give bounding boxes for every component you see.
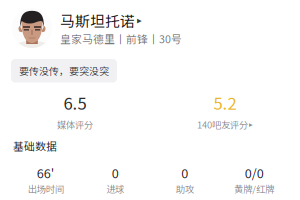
staticText: 助攻: [176, 182, 194, 195]
staticText: 出场时间: [28, 182, 64, 195]
staticText: 66': [37, 164, 55, 182]
button[interactable]: 马斯坦托诺: [0, 0, 300, 48]
staticText: 马斯坦托诺: [60, 10, 135, 31]
staticText: 皇家马德里丨前锋丨30号: [60, 31, 182, 46]
staticText: 基础数据: [13, 138, 57, 153]
staticText: 5.2: [213, 90, 236, 115]
staticText: ▸: [249, 120, 253, 129]
staticText: 要传没传，要突没突: [19, 63, 109, 78]
staticText: 6.5: [63, 90, 86, 115]
staticText: ▸: [137, 15, 142, 26]
button[interactable]: 5.2: [150, 90, 300, 131]
staticText: 140吧友评分: [197, 118, 248, 131]
staticText: 0: [181, 164, 188, 182]
staticText: 进球: [106, 182, 124, 195]
staticText: 0/0: [245, 164, 264, 182]
staticText: 0: [112, 164, 119, 182]
staticText: 媒体评分: [57, 118, 93, 131]
staticText: 黄牌/红牌: [234, 182, 274, 195]
